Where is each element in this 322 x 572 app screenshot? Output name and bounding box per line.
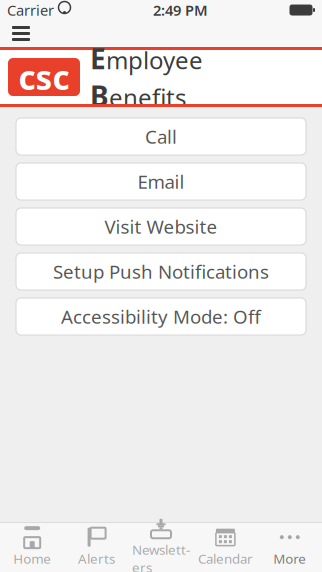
staticText: Calendar (198, 550, 253, 567)
button[interactable]: Newsletters (129, 523, 193, 571)
staticText: Email (137, 169, 184, 194)
staticText: Visit Website (104, 214, 217, 239)
staticText: mployee (106, 44, 203, 76)
staticText: csc (18, 55, 69, 99)
button[interactable]: Visit Website (16, 208, 306, 245)
button[interactable]: Menu (0, 20, 42, 47)
staticText: Home (13, 550, 51, 567)
staticText: Alerts (78, 550, 115, 567)
button[interactable]: Calendar (193, 523, 258, 571)
staticText: Carrier (7, 0, 54, 20)
button[interactable]: More (258, 523, 322, 571)
staticText: 2:49 PM (153, 0, 208, 20)
staticText: Call (145, 124, 177, 149)
button[interactable]: Setup Push Notifications (16, 253, 306, 290)
button[interactable]: Alerts (64, 523, 129, 571)
button[interactable]: Email (16, 163, 306, 200)
button[interactable]: Accessibility Mode: Off (16, 298, 306, 335)
staticText: enefits (109, 81, 186, 113)
staticText: Newsletters (132, 541, 190, 572)
staticText: More (273, 550, 306, 567)
staticText: E (90, 40, 106, 77)
staticText: Setup Push Notifications (53, 259, 269, 284)
staticText: B (90, 77, 109, 114)
button[interactable]: Call (16, 118, 306, 155)
staticText: Accessibility Mode: Off (61, 304, 261, 329)
button[interactable]: Home (0, 523, 64, 571)
